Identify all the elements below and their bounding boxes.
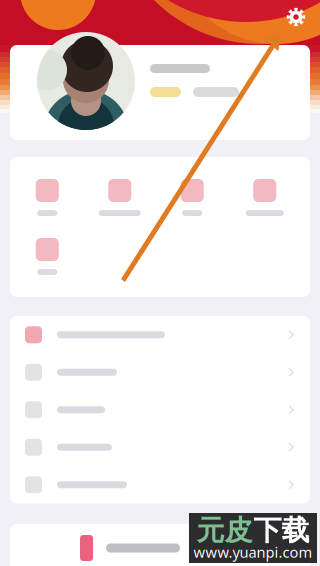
button[interactable]: Menu item [10,428,310,466]
button[interactable]: Shortcut [83,175,156,220]
button[interactable]: Menu item [10,466,310,503]
button[interactable]: Shortcut [11,234,83,279]
staticText: 下载 [253,513,309,548]
button[interactable]: Menu item [10,353,310,391]
button[interactable]: Settings [286,7,306,27]
staticText: 元皮 [196,513,252,548]
button[interactable]: Menu item [10,316,310,353]
staticText: www.yuanpi.com [193,542,312,562]
button[interactable]: Shortcut [11,175,83,220]
button[interactable]: Shortcut [228,175,301,220]
button[interactable]: Shortcut [156,175,228,220]
button[interactable]: Promotion [10,524,310,566]
button[interactable]: Menu item [10,391,310,428]
